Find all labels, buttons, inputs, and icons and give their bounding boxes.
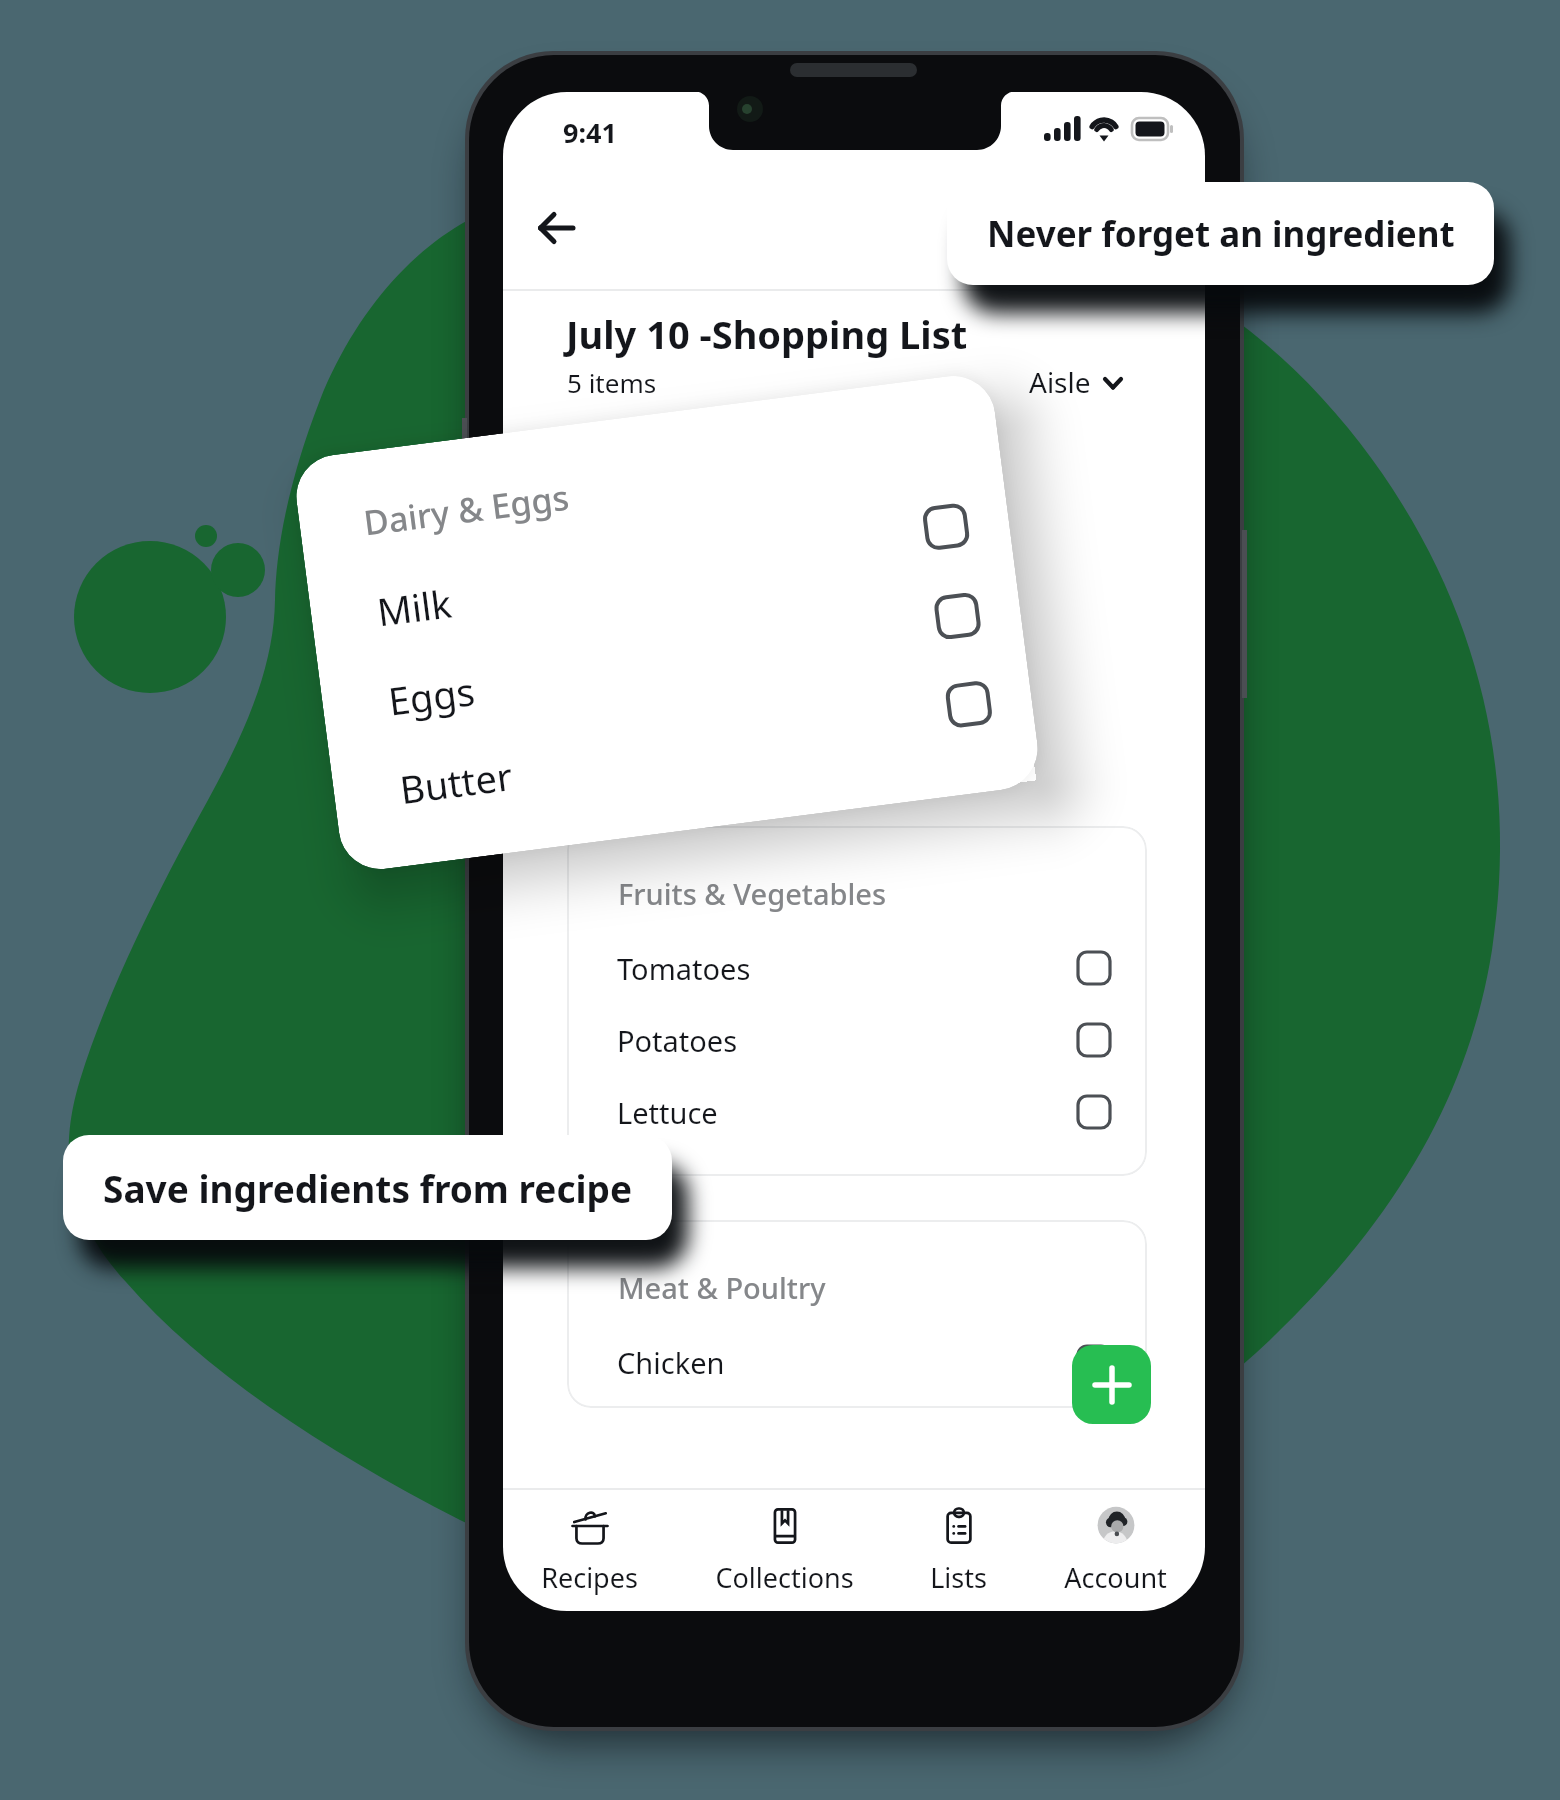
staticText: Aisle <box>1029 363 1091 401</box>
staticText: Never forget an ingredient <box>987 210 1455 258</box>
button[interactable]: Back <box>518 190 594 266</box>
staticText: Meat & Poultry <box>618 1268 826 1307</box>
staticText: Collections <box>715 1559 854 1596</box>
button[interactable]: Potatoes <box>567 1004 1147 1076</box>
staticText: Dairy & Eggs <box>361 474 572 545</box>
button[interactable]: Account <box>1064 1490 1167 1596</box>
button[interactable]: Save ingredients from recipe <box>63 1135 672 1240</box>
button[interactable]: Lists <box>930 1490 987 1596</box>
staticText: Chicken <box>617 1343 725 1382</box>
staticText: 9:41 <box>563 114 617 151</box>
staticText: Save ingredients from recipe <box>103 1163 633 1213</box>
staticText: July 10 -Shopping List <box>566 308 968 360</box>
staticText: Recipes <box>541 1559 638 1596</box>
staticText: Account <box>1064 1559 1167 1596</box>
button[interactable]: Recipes <box>541 1490 638 1596</box>
staticText: Lists <box>930 1559 987 1596</box>
button[interactable]: Chicken <box>567 1326 1147 1398</box>
staticText: 5 items <box>567 365 657 400</box>
staticText: Potatoes <box>617 1021 738 1060</box>
staticText: Fruits & Vegetables <box>618 874 887 913</box>
button[interactable]: Never forget an ingredient <box>947 182 1494 285</box>
button[interactable]: Collections <box>715 1490 854 1596</box>
staticText: Tomatoes <box>617 949 751 988</box>
staticText: Lettuce <box>617 1093 718 1132</box>
button[interactable]: Lettuce <box>567 1076 1147 1148</box>
button[interactable]: Add item <box>1072 1345 1151 1424</box>
button[interactable]: Tomatoes <box>567 932 1147 1004</box>
staticText: Eggs <box>385 664 478 727</box>
button[interactable]: Dairy & Eggs <box>291 371 1043 874</box>
button[interactable]: Aisle <box>1023 360 1123 398</box>
staticText: Butter <box>397 749 515 815</box>
staticText: Milk <box>374 576 455 637</box>
